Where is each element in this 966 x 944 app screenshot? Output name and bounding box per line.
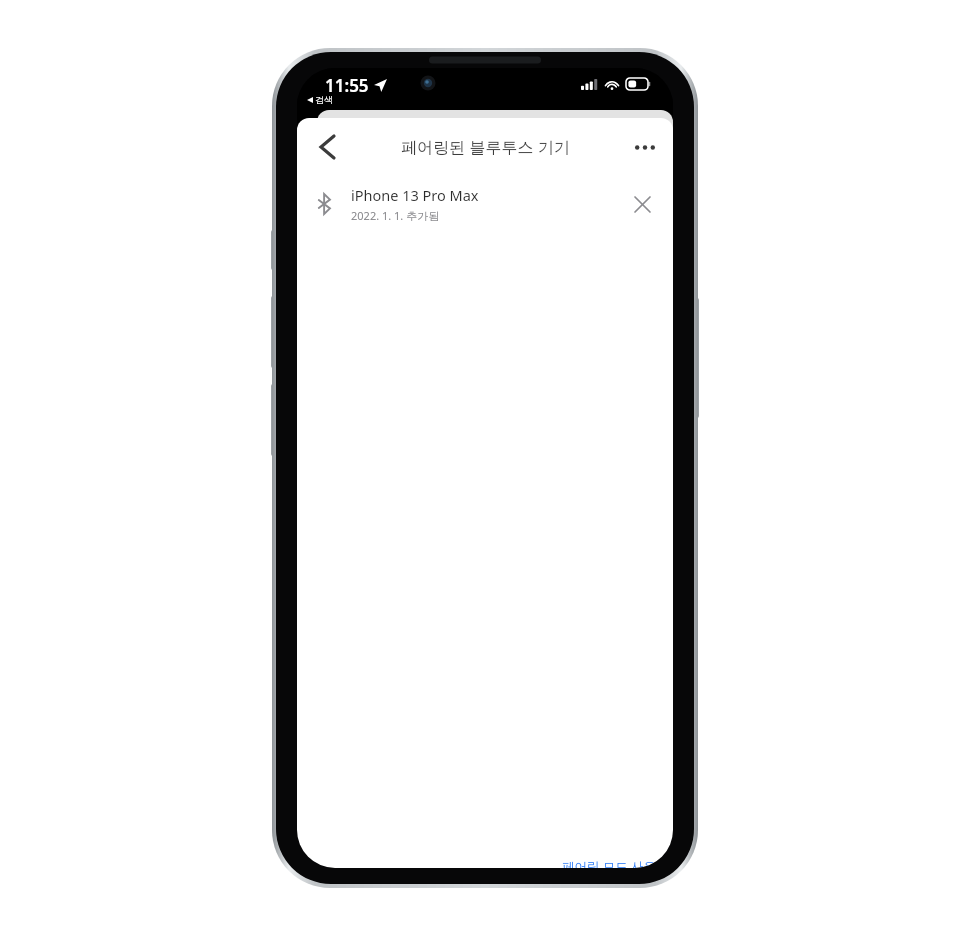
button[interactable]: 더보기 (623, 125, 667, 169)
button[interactable]: iPhone 13 Pro Max (297, 176, 673, 232)
button[interactable]: 기기 삭제 (625, 187, 659, 221)
button[interactable]: 뒤로 (305, 125, 349, 169)
staticText: iPhone 13 Pro Max (351, 185, 479, 205)
staticText: 페어링 모드 사용 (562, 858, 657, 868)
staticText: 2022. 1. 1. 추가됨 (351, 208, 440, 223)
staticText: 검색 (315, 94, 333, 105)
staticText: 11:55 (325, 74, 369, 97)
button[interactable]: 페어링 모드 사용 (546, 852, 673, 868)
staticText: 페어링된 블루투스 기기 (401, 136, 570, 158)
